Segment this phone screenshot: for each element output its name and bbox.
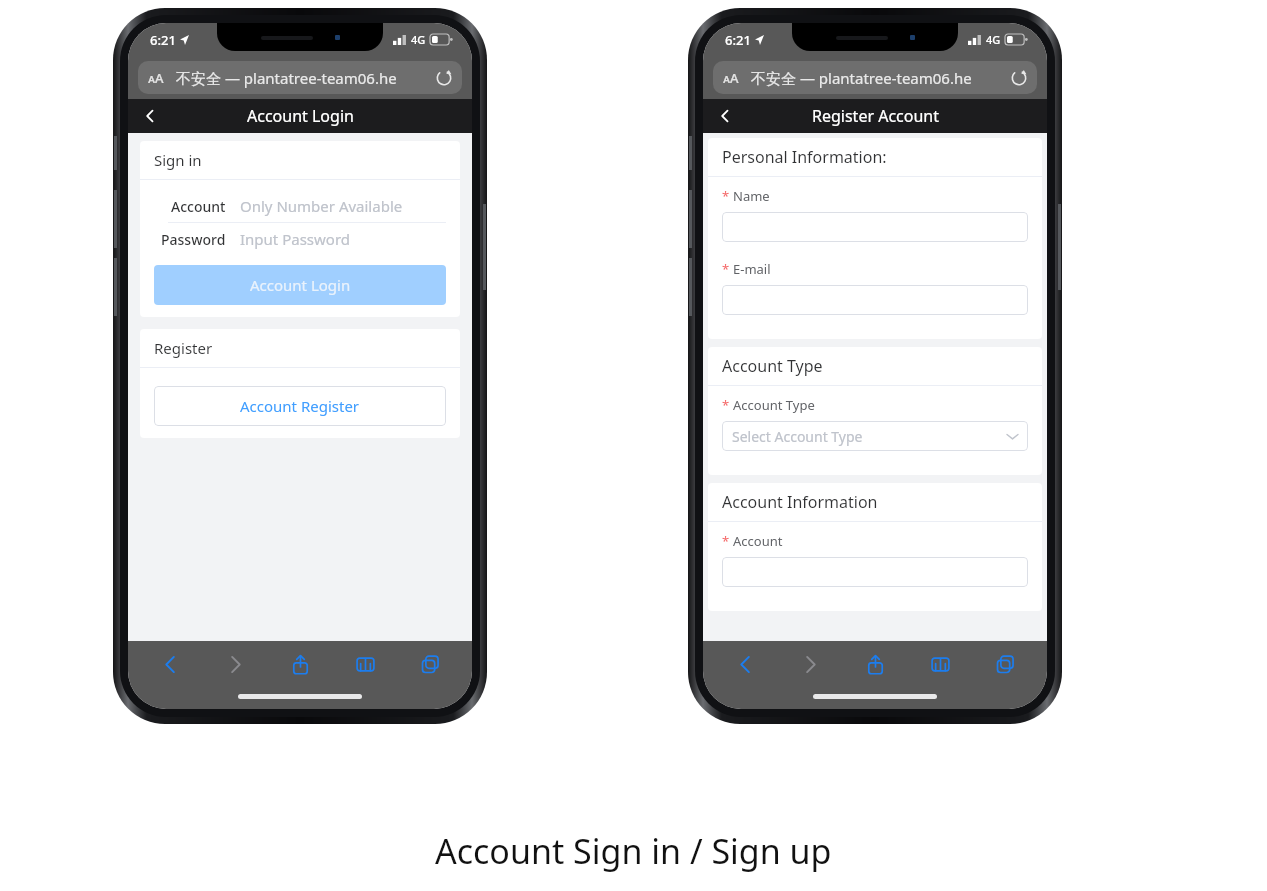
- button[interactable]: ᴀA: [138, 61, 462, 94]
- button[interactable]: Back: [722, 641, 768, 687]
- button[interactable]: Tabs: [407, 641, 453, 687]
- button[interactable]: Account Register: [154, 386, 446, 426]
- button[interactable]: [722, 557, 1028, 587]
- staticText: E-mail: [733, 260, 771, 278]
- staticText: Account Sign in / Sign up: [435, 828, 832, 874]
- staticText: Account: [171, 197, 226, 216]
- staticText: Account Login: [250, 275, 351, 295]
- staticText: Select Account Type: [732, 427, 863, 446]
- button[interactable]: Select Account Type: [722, 421, 1028, 451]
- button[interactable]: Share: [852, 641, 898, 687]
- button[interactable]: Bookmarks: [342, 641, 388, 687]
- staticText: Account Register: [240, 396, 360, 416]
- staticText: Account Type: [722, 355, 823, 377]
- staticText: Input Password: [240, 229, 351, 249]
- staticText: 不安全 — plantatree-team06.he: [751, 68, 1005, 88]
- staticText: Account Login: [247, 105, 354, 127]
- staticText: 6:21: [725, 31, 751, 49]
- staticText: Personal Information:: [722, 146, 887, 168]
- button[interactable]: Forward: [212, 641, 258, 687]
- staticText: 不安全 — plantatree-team06.he: [176, 68, 430, 88]
- staticText: Password: [161, 230, 226, 249]
- button[interactable]: [722, 212, 1028, 242]
- staticText: *: [722, 532, 730, 550]
- staticText: Sign in: [154, 150, 202, 170]
- button[interactable]: [722, 285, 1028, 315]
- staticText: *: [722, 260, 730, 278]
- button[interactable]: Share: [277, 641, 323, 687]
- button[interactable]: ᴀA: [713, 61, 1037, 94]
- staticText: Account Information: [722, 491, 878, 513]
- staticText: ᴀA: [148, 69, 164, 87]
- button[interactable]: Bookmarks: [917, 641, 963, 687]
- staticText: ᴀA: [723, 69, 739, 87]
- button[interactable]: Back: [147, 641, 193, 687]
- other: Reload: [436, 70, 452, 86]
- staticText: *: [722, 396, 730, 414]
- staticText: Name: [733, 187, 770, 205]
- button[interactable]: Forward: [787, 641, 833, 687]
- staticText: 4G: [411, 32, 426, 47]
- button[interactable]: Tabs: [982, 641, 1028, 687]
- button[interactable]: Password: [154, 223, 446, 255]
- staticText: Account: [733, 532, 783, 550]
- button[interactable]: Account Login: [154, 265, 446, 305]
- staticText: 4G: [986, 32, 1001, 47]
- button[interactable]: Back: [703, 99, 747, 133]
- staticText: Register: [154, 338, 213, 358]
- staticText: *: [722, 187, 730, 205]
- staticText: Only Number Available: [240, 196, 403, 216]
- other: Reload: [1011, 70, 1027, 86]
- staticText: Register Account: [812, 105, 939, 127]
- staticText: Account Type: [733, 396, 815, 414]
- button[interactable]: Account: [154, 190, 446, 222]
- button[interactable]: Back: [128, 99, 172, 133]
- staticText: 6:21: [150, 31, 176, 49]
